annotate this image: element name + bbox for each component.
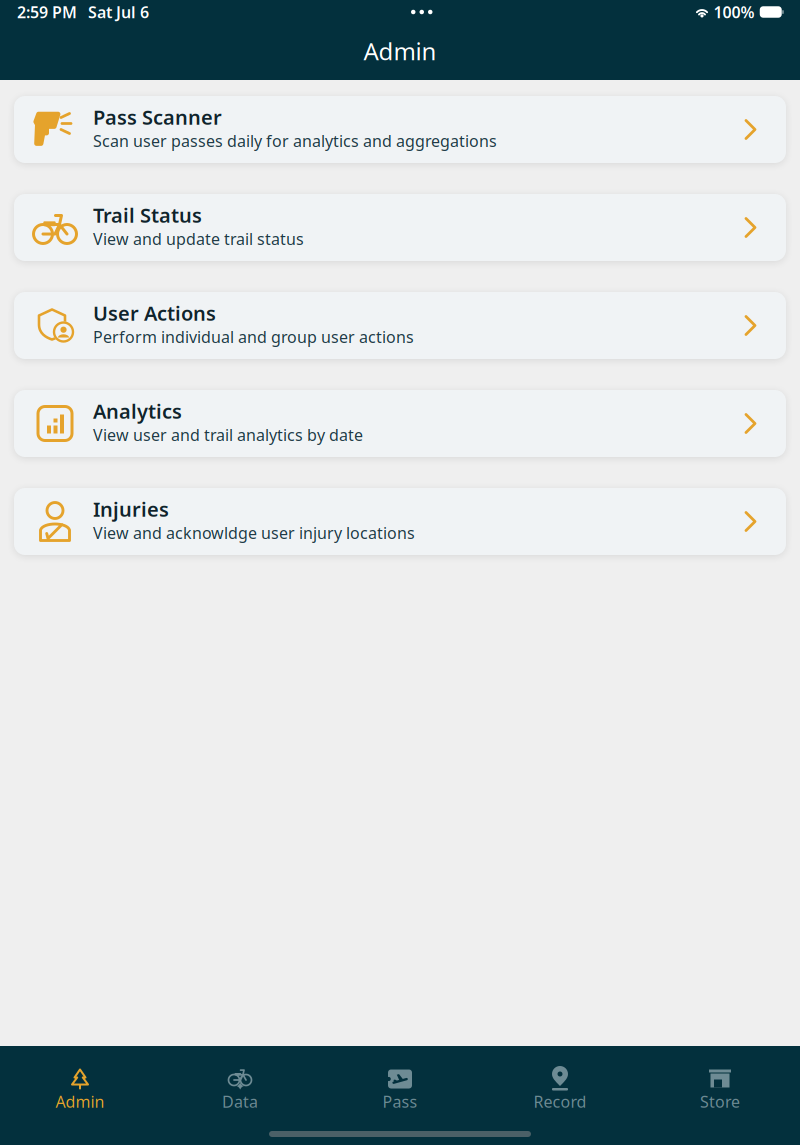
staticText: Injuries	[93, 496, 169, 522]
button[interactable]: Trail Status	[14, 194, 786, 261]
staticText: 2:59 PM	[17, 1, 77, 23]
staticText: Admin	[55, 1091, 104, 1112]
button[interactable]: Pass Scanner	[14, 96, 786, 163]
button[interactable]: Record	[480, 1046, 640, 1122]
staticText: Pass	[382, 1091, 417, 1112]
staticText: Admin	[363, 35, 436, 67]
button[interactable]: Injuries	[14, 488, 786, 555]
button[interactable]: Admin	[0, 1046, 160, 1122]
staticText: Trail Status	[93, 202, 202, 228]
staticText: Perform individual and group user action…	[93, 326, 414, 347]
staticText: Record	[533, 1091, 586, 1112]
button[interactable]: Analytics	[14, 390, 786, 457]
button[interactable]: User Actions	[14, 292, 786, 359]
staticText: View user and trail analytics by date	[93, 424, 363, 445]
staticText: Data	[222, 1091, 258, 1112]
staticText: Sat Jul 6	[88, 1, 149, 23]
staticText: Scan user passes daily for analytics and…	[93, 130, 497, 151]
staticText: 100%	[713, 1, 754, 23]
staticText: Analytics	[93, 398, 182, 424]
staticText: Store	[700, 1091, 740, 1112]
staticText: View and acknowldge user injury location…	[93, 522, 415, 543]
button[interactable]: Data	[160, 1046, 320, 1122]
staticText: Pass Scanner	[93, 104, 222, 130]
staticText: User Actions	[93, 300, 216, 326]
button[interactable]: Pass	[320, 1046, 480, 1122]
button[interactable]: Store	[640, 1046, 800, 1122]
staticText: View and update trail status	[93, 228, 304, 249]
